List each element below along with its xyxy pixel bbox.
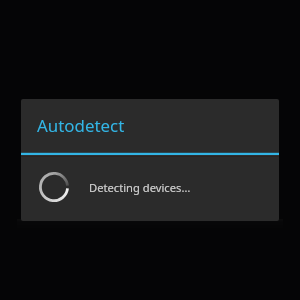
button[interactable]: Autodetect [0,0,300,300]
staticText: Autodetect [37,114,125,137]
other: Searching for devices [39,172,69,202]
button[interactable]: Autodetect [21,99,279,221]
staticText: Detecting devices… [89,180,191,195]
